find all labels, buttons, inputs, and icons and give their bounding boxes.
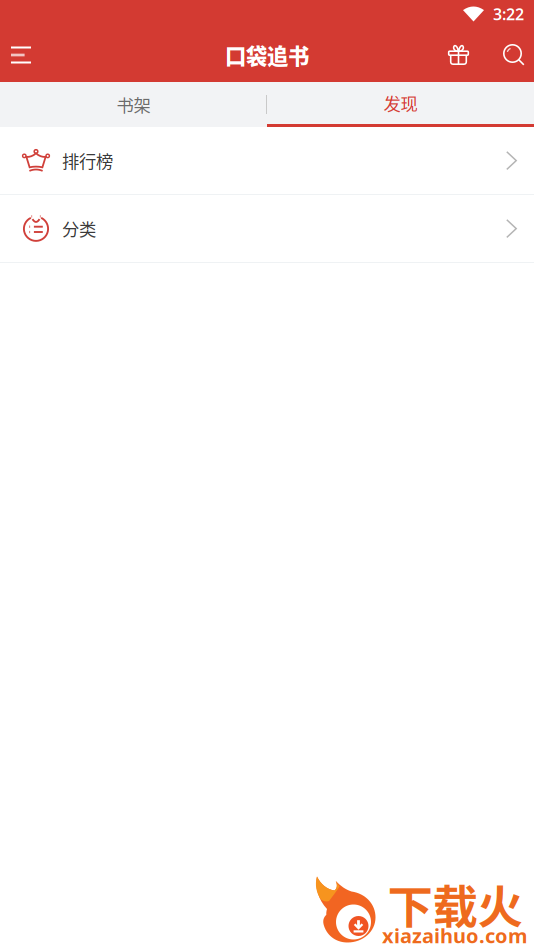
- button[interactable]: 发现: [267, 82, 534, 127]
- button[interactable]: Gifts: [444, 28, 493, 82]
- staticText: 排行榜: [62, 148, 113, 173]
- button[interactable]: Menu: [0, 28, 53, 82]
- staticText: 下载火: [387, 871, 522, 937]
- staticText: 书架: [116, 92, 150, 117]
- button[interactable]: 分类: [0, 195, 534, 262]
- staticText: 发现: [383, 90, 417, 116]
- button[interactable]: 书架: [0, 82, 267, 127]
- button[interactable]: Search: [493, 28, 534, 82]
- button[interactable]: 排行榜: [0, 127, 534, 194]
- staticText: 3:22: [493, 3, 524, 25]
- staticText: 口袋追书: [225, 40, 309, 70]
- staticText: xiazaihuo.com: [382, 922, 528, 949]
- staticText: 分类: [62, 216, 96, 241]
